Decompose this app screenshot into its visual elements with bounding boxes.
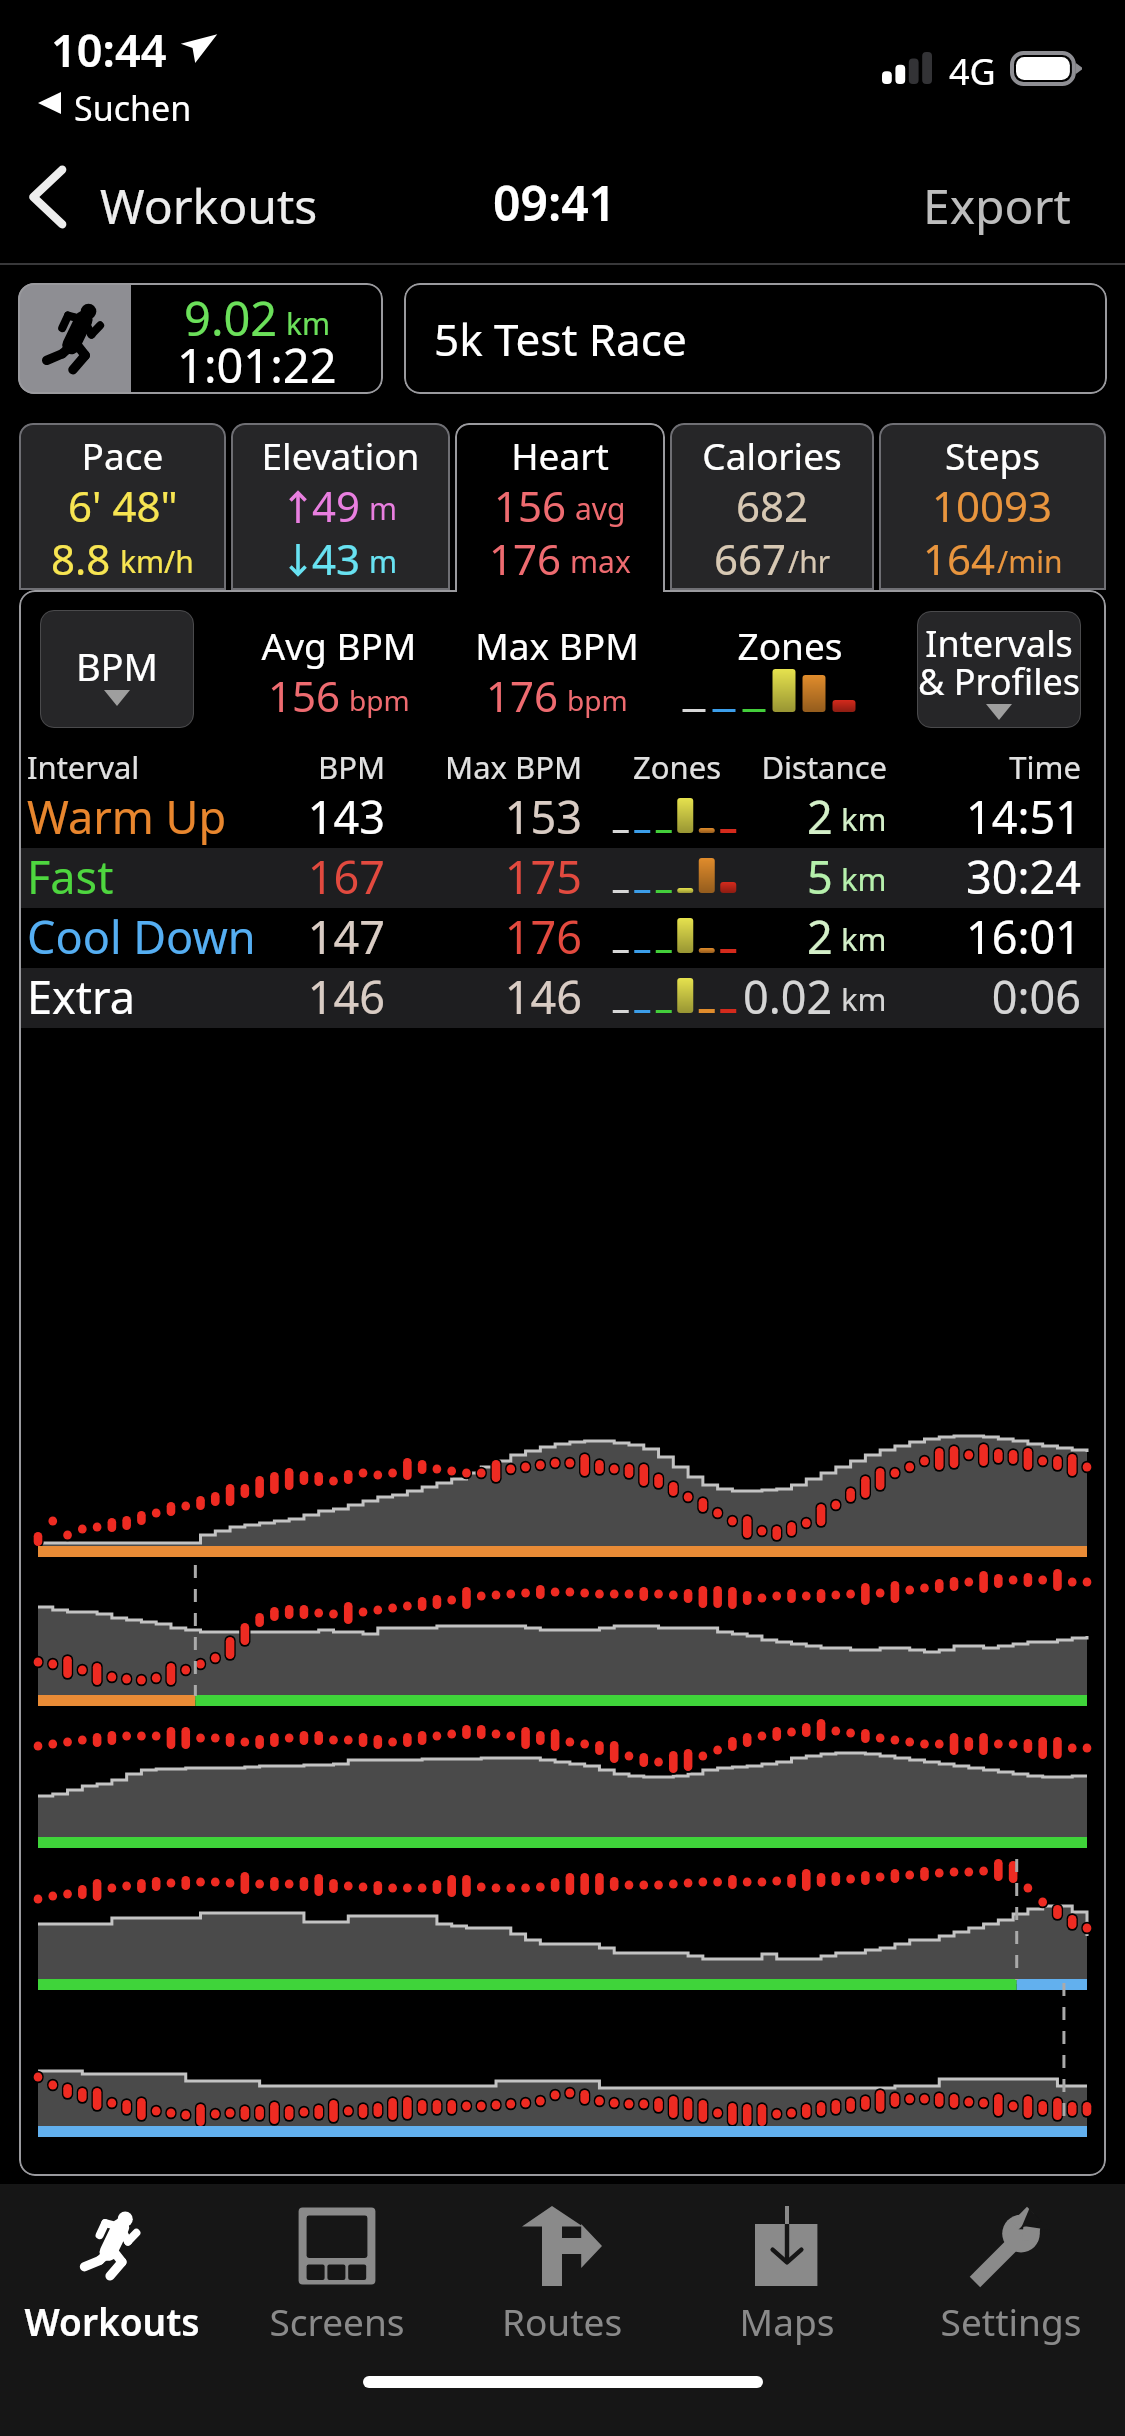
staticText: 176 <box>486 667 559 724</box>
staticText: 682 <box>736 477 809 534</box>
staticText: km <box>841 858 887 900</box>
staticText: 176 <box>489 530 562 587</box>
staticText: m <box>369 541 398 582</box>
staticText: km <box>841 918 887 960</box>
staticText: 2 <box>807 906 833 966</box>
staticText: 4G <box>949 47 996 96</box>
staticText: 2 <box>807 786 833 846</box>
button[interactable]: Fast <box>19 848 1106 908</box>
staticText: Distance <box>759 746 887 788</box>
staticText: 667 <box>714 530 787 587</box>
button[interactable]: 5k Test Race <box>404 283 1107 394</box>
staticText: 30:24 <box>919 846 1081 906</box>
staticText: Zones <box>660 620 920 670</box>
button[interactable]: Screens <box>232 2188 442 2338</box>
staticText: Pace <box>19 430 226 480</box>
staticText: 10093 <box>932 477 1053 534</box>
staticText: /hr <box>788 541 831 582</box>
staticText: 9.02 <box>184 286 278 350</box>
staticText: 164 <box>923 530 996 587</box>
staticText: 0.02 <box>743 966 833 1026</box>
staticText: Steps <box>879 430 1106 480</box>
staticText: 147 <box>199 906 385 966</box>
staticText: Interval <box>27 746 140 788</box>
staticText: 14:51 <box>919 786 1081 846</box>
staticText: Intervals <box>917 619 1081 668</box>
staticText: /min <box>997 541 1063 582</box>
staticText: 156 <box>268 667 341 724</box>
staticText: Fast <box>27 846 114 906</box>
button[interactable]: Cool Down <box>19 908 1106 968</box>
staticText: 43 <box>312 530 361 587</box>
staticText: 8.8 <box>51 530 111 587</box>
button[interactable]: Export <box>923 173 1071 238</box>
staticText: BPM <box>199 746 385 788</box>
staticText: 167 <box>199 846 385 906</box>
staticText: BPM <box>40 640 194 692</box>
staticText: Elevation <box>231 430 450 480</box>
staticText: 5k Test Race <box>434 309 687 369</box>
staticText: 146 <box>399 966 582 1026</box>
staticText: km <box>286 303 331 344</box>
staticText: Heart <box>455 430 665 480</box>
button[interactable]: Pace <box>19 423 226 590</box>
button[interactable]: BPM <box>40 610 194 728</box>
button[interactable]: Extra <box>19 968 1106 1028</box>
button[interactable]: Steps <box>879 423 1106 590</box>
staticText: 09:41 <box>493 170 617 235</box>
staticText: bpm <box>349 681 410 719</box>
staticText: 156 <box>494 477 567 534</box>
staticText: Routes <box>457 2296 667 2346</box>
staticText: bpm <box>567 681 628 719</box>
staticText: 16:01 <box>919 906 1081 966</box>
button[interactable]: Intervals <box>917 611 1081 728</box>
staticText: 175 <box>399 846 582 906</box>
button[interactable]: Calories <box>670 423 874 590</box>
staticText: Time <box>949 746 1081 788</box>
staticText: km <box>841 978 887 1020</box>
staticText: 10:44 <box>51 19 167 80</box>
button[interactable]: Warm Up <box>19 788 1106 848</box>
staticText: avg <box>575 488 626 529</box>
staticText: Cool Down <box>27 906 256 966</box>
staticText: 143 <box>199 786 385 846</box>
button[interactable]: Workouts <box>7 2188 217 2338</box>
staticText: 146 <box>199 966 385 1026</box>
staticText: 49 <box>312 477 361 534</box>
staticText: Calories <box>670 430 874 480</box>
staticText: Workouts <box>100 173 318 238</box>
staticText: Warm Up <box>27 786 227 846</box>
button[interactable]: 9.02 <box>18 283 383 394</box>
staticText: Zones <box>603 746 751 788</box>
staticText: Max BPM <box>442 620 672 670</box>
staticText: 0:06 <box>919 966 1081 1026</box>
staticText: Max BPM <box>399 746 582 788</box>
staticText: Settings <box>906 2296 1116 2346</box>
button[interactable]: Maps <box>682 2188 892 2338</box>
staticText: max <box>570 541 631 582</box>
staticText: 176 <box>399 906 582 966</box>
button[interactable]: Workouts <box>28 162 318 227</box>
staticText: 153 <box>399 786 582 846</box>
staticText: 5 <box>807 846 833 906</box>
staticText: Workouts <box>7 2296 217 2346</box>
button[interactable]: Routes <box>457 2188 667 2338</box>
button[interactable]: Settings <box>906 2188 1116 2338</box>
staticText: 6' 48" <box>68 477 178 534</box>
staticText: & Profiles <box>917 657 1081 706</box>
staticText: Screens <box>232 2296 442 2346</box>
staticText: 1:01:22 <box>177 333 337 394</box>
staticText: Suchen <box>74 85 192 131</box>
button[interactable]: Heart <box>455 423 665 598</box>
button[interactable]: Elevation <box>231 423 450 590</box>
staticText: km <box>841 798 887 840</box>
staticText: km/h <box>120 541 194 582</box>
staticText: Extra <box>27 966 136 1026</box>
staticText: Avg BPM <box>224 620 454 670</box>
staticText: m <box>369 488 398 529</box>
staticText: Maps <box>682 2296 892 2346</box>
